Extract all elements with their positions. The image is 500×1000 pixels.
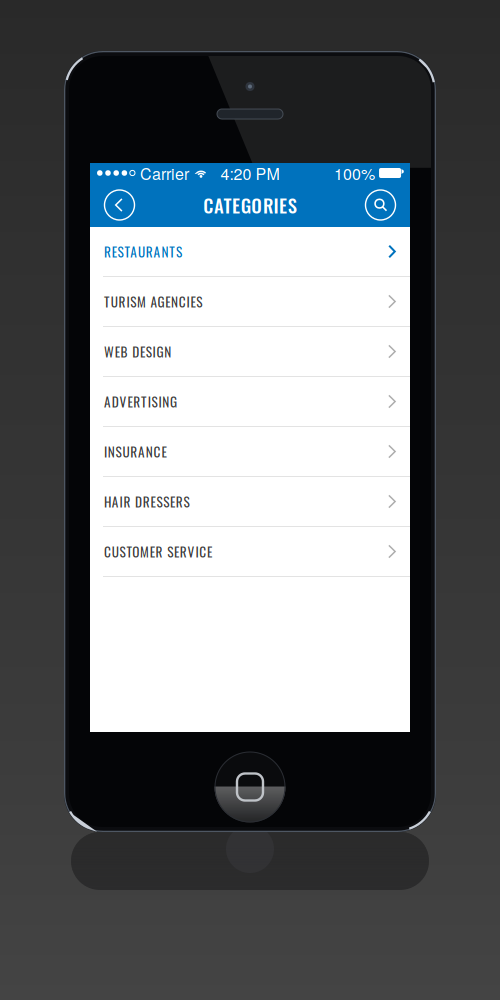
button[interactable]: ADVERTISING — [90, 377, 410, 427]
staticText: CUSTOMER SERVICE — [104, 542, 212, 561]
staticText: WEB DESIGN — [104, 342, 171, 361]
staticText: TURISM AGENCIES — [104, 292, 202, 311]
button[interactable]: Search — [360, 185, 400, 225]
staticText: 4:20 PM — [220, 161, 279, 184]
staticText: INSURANCE — [104, 442, 166, 461]
staticText: HAIR DRESSERS — [104, 492, 190, 511]
button[interactable]: WEB DESIGN — [90, 327, 410, 377]
staticText: Carrier — [140, 161, 189, 184]
button[interactable]: TURISM AGENCIES — [90, 277, 410, 327]
button[interactable]: RESTAURANTS — [90, 227, 410, 277]
staticText: 100% — [334, 161, 375, 184]
staticText: CATEGORIES — [203, 191, 297, 219]
staticText: ADVERTISING — [104, 392, 177, 411]
button[interactable]: INSURANCE — [90, 427, 410, 477]
button[interactable]: HAIR DRESSERS — [90, 477, 410, 527]
staticText: RESTAURANTS — [104, 242, 182, 261]
button[interactable]: CUSTOMER SERVICE — [90, 527, 410, 577]
button[interactable]: Back — [99, 185, 139, 225]
